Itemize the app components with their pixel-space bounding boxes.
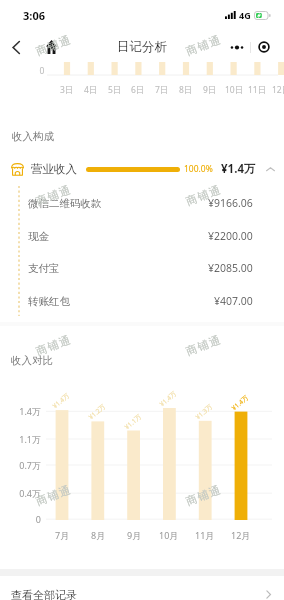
button[interactable]: 现金 [0, 220, 284, 252]
staticText: ¥9166.06 [208, 196, 253, 210]
staticText: 微信二维码收款 [28, 197, 102, 210]
staticText: 转账红包 [28, 295, 70, 308]
staticText: 0.7万 [2, 459, 41, 471]
staticText: 11日 [248, 84, 267, 96]
staticText: 商铺通 [34, 32, 74, 58]
staticText: 查看全部记录 [11, 588, 77, 600]
staticText: ¥1.3万 [193, 402, 214, 421]
button[interactable]: 营业收入 [0, 155, 284, 183]
staticText: 营业收入 [31, 162, 77, 176]
staticText: ¥1.4万 [221, 161, 256, 177]
staticText: ¥1.2万 [86, 402, 107, 421]
staticText: 收入构成 [12, 130, 54, 143]
button[interactable]: More [224, 37, 250, 57]
staticText: 12月 [231, 529, 251, 541]
staticText: 支付宝 [28, 262, 60, 275]
staticText: 商铺通 [34, 182, 74, 208]
staticText: ¥2085.00 [208, 261, 253, 275]
staticText: 0 [38, 65, 46, 77]
staticText: ¥407.00 [214, 294, 253, 308]
staticText: 商铺通 [184, 482, 224, 508]
staticText: 10月 [159, 529, 179, 541]
staticText: 4G [239, 9, 251, 21]
button[interactable]: Back [4, 36, 27, 59]
staticText: 0.4万 [2, 487, 41, 499]
button[interactable]: Close [251, 37, 277, 57]
staticText: 1.1万 [2, 433, 41, 445]
staticText: 3:06 [23, 8, 45, 23]
staticText: 3日 [60, 84, 74, 96]
staticText: ¥1.4万 [229, 393, 250, 412]
staticText: 10日 [225, 84, 244, 96]
staticText: 9月 [127, 529, 142, 541]
staticText: 0 [2, 513, 41, 525]
staticText: 1.4万 [2, 405, 41, 417]
staticText: 4日 [84, 84, 98, 96]
staticText: 8月 [91, 529, 106, 541]
staticText: 5日 [108, 84, 122, 96]
staticText: 11月 [195, 529, 215, 541]
button[interactable]: 转账红包 [0, 285, 284, 317]
staticText: 9日 [203, 84, 217, 96]
button[interactable]: Home [40, 36, 62, 58]
button[interactable]: 查看全部记录 [0, 576, 284, 600]
button[interactable]: 微信二维码收款 [0, 187, 284, 219]
button[interactable]: 支付宝 [0, 252, 284, 284]
staticText: 现金 [28, 230, 49, 243]
staticText: 商铺通 [184, 332, 224, 358]
staticText: 商铺通 [184, 32, 224, 58]
staticText: 商铺通 [184, 182, 224, 208]
staticText: 日记分析 [117, 39, 167, 55]
staticText: ¥2200.00 [208, 229, 253, 243]
staticText: 收入对比 [11, 354, 53, 367]
staticText: 100.0% [184, 163, 213, 175]
staticText: ¥1.4万 [157, 389, 178, 408]
staticText: 6日 [131, 84, 145, 96]
staticText: 12日 [272, 84, 284, 96]
staticText: 8日 [179, 84, 193, 96]
staticText: 商铺通 [34, 482, 74, 508]
staticText: 7日 [155, 84, 169, 96]
staticText: 商铺通 [34, 332, 74, 358]
staticText: ¥1.4万 [50, 391, 71, 410]
staticText: ¥1.1万 [122, 412, 143, 431]
staticText: 7月 [55, 529, 70, 541]
